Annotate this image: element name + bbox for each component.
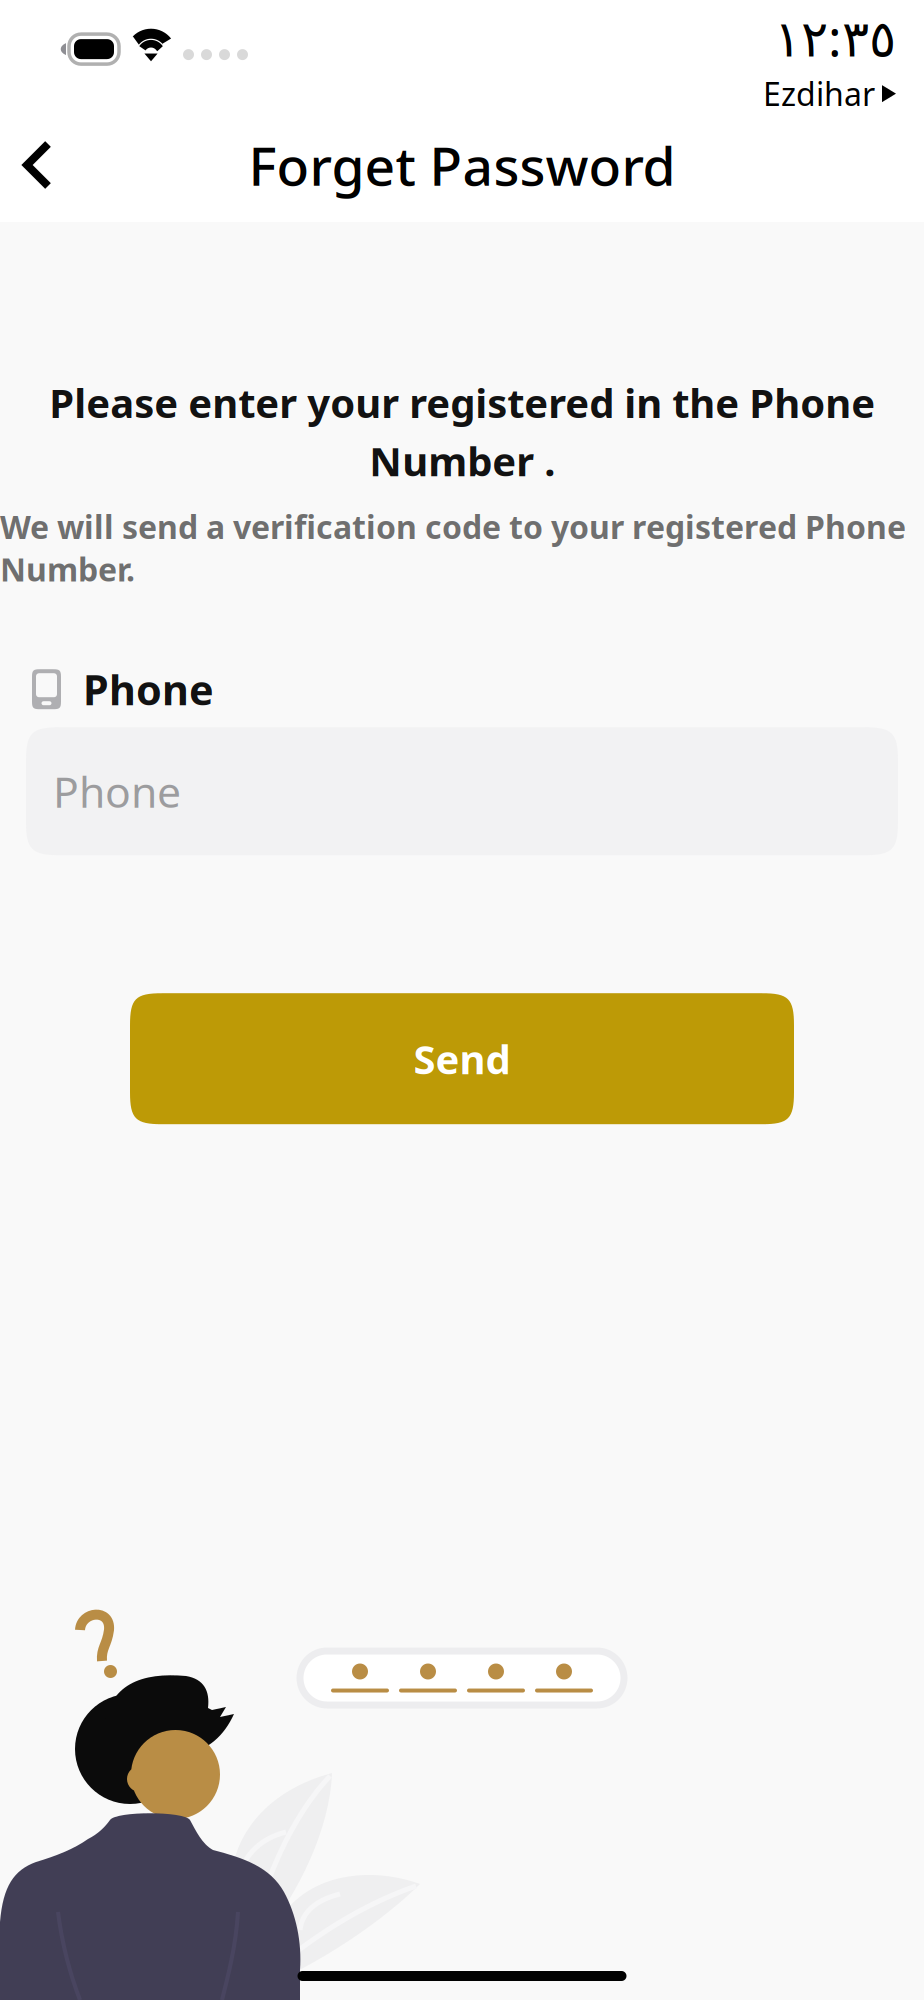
staticText: ١٢:٣٥ <box>774 3 896 70</box>
button[interactable]: Send <box>130 993 794 1124</box>
staticText: Please enter your registered in the Phon… <box>49 376 875 487</box>
staticText: Phone <box>83 662 214 717</box>
staticText: Ezdihar <box>763 72 875 115</box>
staticText: Send <box>413 1032 510 1085</box>
staticText: We will send a verification code to your… <box>0 505 906 590</box>
staticText: Phone <box>53 763 181 820</box>
button[interactable]: Back <box>0 123 76 207</box>
staticText: Forget Password <box>248 130 675 200</box>
